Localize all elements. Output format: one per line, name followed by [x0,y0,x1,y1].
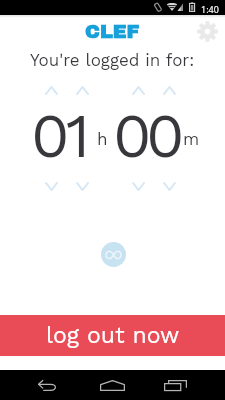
button[interactable]: Increase [76,86,89,95]
button[interactable]: Settings [197,21,218,42]
staticText: 0 [113,99,152,172]
staticText: m [183,129,200,149]
button[interactable]: Increase [45,86,58,95]
button[interactable]: Increase [132,86,145,95]
staticText: log out now [46,322,180,349]
button[interactable]: Back [27,371,68,399]
staticText: h [97,129,108,149]
button[interactable]: Home [92,371,133,399]
staticText: CLEF [85,21,140,42]
button[interactable]: Decrease [76,182,89,191]
button[interactable]: Decrease [132,182,145,191]
staticText: 1 [66,99,91,172]
staticText: 0 [146,99,185,172]
button[interactable]: log out now [0,315,225,356]
button[interactable]: Decrease [163,182,176,191]
staticText: You're logged in for: [30,50,195,70]
button[interactable]: Infinite session [101,242,126,267]
button[interactable]: Increase [163,86,176,95]
button[interactable]: Decrease [45,182,58,191]
staticText: 0 [31,99,70,172]
button[interactable]: Recent apps [155,371,196,399]
staticText: 1:40 [201,3,219,15]
